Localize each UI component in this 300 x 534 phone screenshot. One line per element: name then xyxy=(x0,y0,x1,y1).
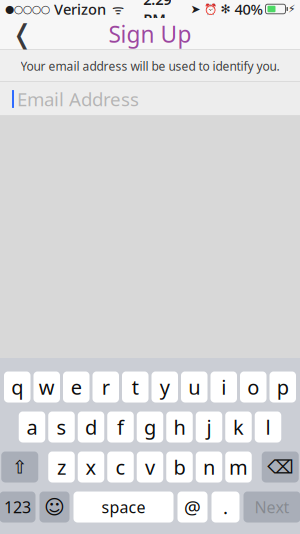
staticText: . xyxy=(223,495,228,519)
staticText: g xyxy=(144,414,156,440)
button[interactable]: w xyxy=(33,371,60,402)
staticText: @ xyxy=(184,495,201,519)
button[interactable]: d xyxy=(78,411,104,442)
button[interactable]: i xyxy=(210,371,237,402)
button[interactable]: f xyxy=(107,411,134,442)
button[interactable]: h xyxy=(166,411,193,442)
button[interactable]: r xyxy=(92,371,119,402)
button[interactable]: t xyxy=(122,371,148,402)
button[interactable]: Delete xyxy=(262,451,299,482)
button[interactable]: x xyxy=(78,451,104,482)
staticText: b xyxy=(173,454,185,480)
staticText: 2:29 PM xyxy=(143,0,171,28)
button[interactable]: a xyxy=(19,411,45,442)
staticText: Next xyxy=(254,496,289,518)
button[interactable]: u xyxy=(181,371,207,402)
staticText: Your email address will be used to ident… xyxy=(20,58,279,74)
button[interactable]: o xyxy=(240,371,266,402)
staticText: m xyxy=(229,454,248,480)
button[interactable]: m xyxy=(225,451,252,482)
staticText: Email Address xyxy=(17,87,139,111)
button[interactable]: . xyxy=(211,491,239,522)
button[interactable]: @ xyxy=(177,491,207,522)
staticText: ⚡︎ xyxy=(288,3,295,15)
button[interactable]: Shift xyxy=(1,451,38,482)
staticText: ☺ xyxy=(44,496,65,518)
staticText: ⏰ xyxy=(200,2,216,16)
button[interactable]: Numbers xyxy=(0,491,35,522)
staticText: w xyxy=(39,374,55,400)
button[interactable]: l xyxy=(255,411,281,442)
staticText: s xyxy=(56,414,66,440)
staticText: e xyxy=(71,374,82,400)
button[interactable]: n xyxy=(196,451,222,482)
button[interactable]: Back xyxy=(0,18,44,50)
staticText: z xyxy=(57,454,66,480)
staticText: h xyxy=(173,414,185,440)
button[interactable]: z xyxy=(48,451,75,482)
button[interactable]: Emoji xyxy=(39,491,69,522)
staticText: j xyxy=(206,414,211,440)
staticText: Sign Up xyxy=(108,19,191,49)
staticText: ⌫ xyxy=(267,456,293,478)
staticText: space xyxy=(101,496,145,518)
button[interactable]: space xyxy=(73,491,173,522)
button[interactable]: e xyxy=(63,371,89,402)
staticText: f xyxy=(117,414,124,440)
staticText: ❬ xyxy=(11,19,33,49)
staticText: ✻ xyxy=(216,2,230,16)
staticText: i xyxy=(221,374,226,400)
button[interactable]: Email Address xyxy=(0,82,300,116)
staticText: l xyxy=(265,414,270,440)
staticText: d xyxy=(85,414,97,440)
staticText: q xyxy=(11,374,23,400)
staticText: ●○○○○ xyxy=(5,3,50,15)
staticText: Verizon xyxy=(50,0,106,19)
button[interactable]: b xyxy=(166,451,193,482)
staticText: 40% xyxy=(230,0,262,19)
staticText: v xyxy=(145,454,155,480)
staticText: a xyxy=(26,414,37,440)
staticText: x xyxy=(85,454,96,480)
staticText: u xyxy=(188,374,200,400)
button[interactable]: p xyxy=(269,371,296,402)
staticText: o xyxy=(247,374,259,400)
staticText: p xyxy=(277,374,289,400)
staticText: c xyxy=(115,454,125,480)
staticText: 123 xyxy=(4,496,31,518)
button[interactable]: k xyxy=(225,411,252,442)
staticText: k xyxy=(233,414,244,440)
staticText: ᯤ xyxy=(106,0,124,18)
staticText: r xyxy=(102,374,110,400)
button[interactable]: g xyxy=(137,411,163,442)
staticText: ⇧ xyxy=(12,456,28,478)
button[interactable]: q xyxy=(4,371,30,402)
staticText: y xyxy=(160,374,170,400)
button[interactable]: Next xyxy=(243,491,300,522)
staticText: ➤ xyxy=(190,2,200,16)
button[interactable]: y xyxy=(151,371,178,402)
button[interactable]: v xyxy=(137,451,163,482)
staticText: t xyxy=(132,374,139,400)
button[interactable]: c xyxy=(107,451,134,482)
staticText: n xyxy=(203,454,215,480)
button[interactable]: s xyxy=(48,411,75,442)
button[interactable]: j xyxy=(196,411,222,442)
